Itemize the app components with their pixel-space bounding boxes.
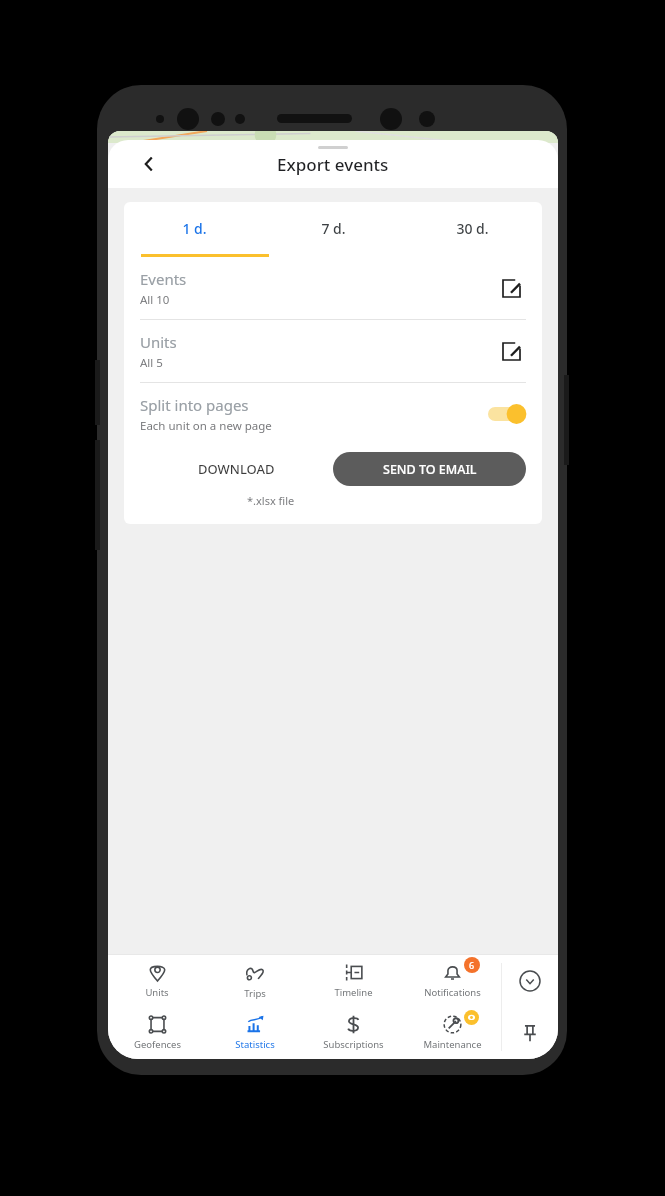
- button[interactable]: Events: [124, 257, 542, 319]
- button[interactable]: Units: [108, 955, 206, 1007]
- staticText: Units: [140, 332, 177, 352]
- staticText: Units: [145, 986, 169, 999]
- staticText: Subscriptions: [323, 1038, 384, 1051]
- staticText: Timeline: [334, 986, 373, 999]
- button[interactable]: 6: [403, 955, 502, 1007]
- button[interactable]: Trips: [206, 955, 304, 1007]
- staticText: All 10: [140, 292, 170, 308]
- staticText: 6: [469, 959, 475, 971]
- button[interactable]: Back: [130, 145, 168, 183]
- button[interactable]: Timeline: [304, 955, 403, 1007]
- staticText: Statistics: [235, 1038, 275, 1051]
- button[interactable]: Geofences: [108, 1007, 206, 1059]
- staticText: Export events: [277, 153, 389, 176]
- button[interactable]: 7 d.: [264, 202, 403, 254]
- staticText: Maintenance: [423, 1038, 482, 1051]
- button[interactable]: Subscriptions: [304, 1007, 403, 1059]
- button[interactable]: Edit Events: [496, 273, 526, 303]
- staticText: DOWNLOAD: [198, 460, 275, 478]
- button[interactable]: Split into pages: [124, 383, 542, 445]
- button[interactable]: Pin: [502, 1007, 558, 1059]
- staticText: Geofences: [134, 1038, 181, 1051]
- button[interactable]: 30 d.: [403, 202, 542, 254]
- staticText: Split into pages: [140, 395, 249, 415]
- button[interactable]: SEND TO EMAIL: [333, 452, 526, 486]
- button[interactable]: Expand: [502, 955, 558, 1007]
- button[interactable]: Units: [124, 320, 542, 382]
- staticText: All 5: [140, 355, 163, 371]
- button[interactable]: Statistics: [206, 1007, 304, 1059]
- button[interactable]: 1 d.: [124, 202, 264, 254]
- staticText: 30 d.: [456, 219, 489, 238]
- button[interactable]: Maintenance: [403, 1007, 502, 1059]
- button[interactable]: Edit Units: [496, 336, 526, 366]
- staticText: SEND TO EMAIL: [383, 461, 477, 478]
- staticText: 1 d.: [182, 219, 207, 238]
- staticText: Trips: [244, 987, 266, 1000]
- staticText: 7 d.: [321, 219, 346, 238]
- button[interactable]: DOWNLOAD: [140, 445, 333, 493]
- staticText: Events: [140, 269, 187, 289]
- staticText: Each unit on a new page: [140, 418, 272, 434]
- staticText: Notifications: [424, 986, 481, 999]
- staticText: *.xlsx file: [247, 493, 295, 508]
